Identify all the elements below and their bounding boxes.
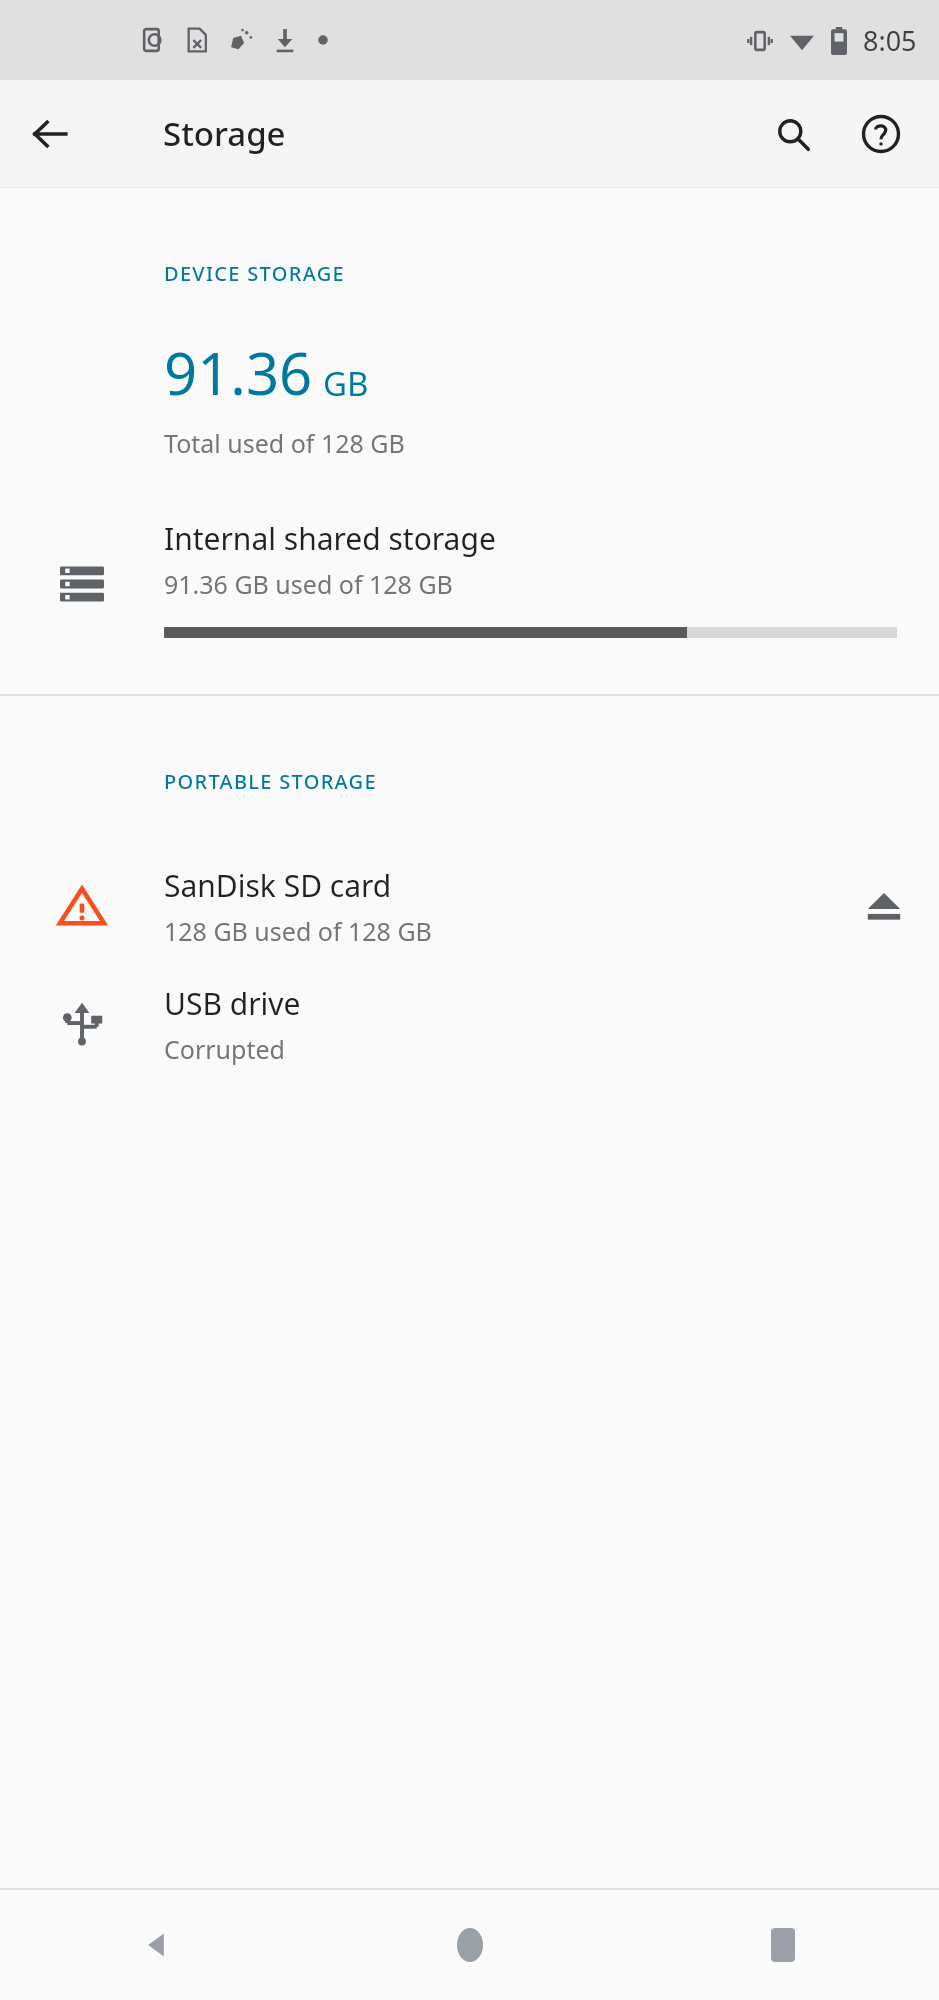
staticText: 128 GB used of 128 GB [164,914,432,948]
staticText: PORTABLE STORAGE [164,768,377,795]
button[interactable]: Internal shared storage [0,510,939,638]
staticText: GB [323,361,369,406]
staticText: 91.36 [164,333,313,412]
button[interactable]: Eject [829,847,939,965]
staticText: SanDisk SD card [164,865,392,906]
button[interactable]: Home [313,1890,626,2000]
button[interactable]: Search [761,102,825,166]
staticText: Corrupted [164,1032,285,1066]
staticText: Internal shared storage [164,518,496,559]
staticText: 91.36 GB used of 128 GB [164,567,453,601]
button[interactable]: Back [0,1890,313,2000]
button[interactable]: Back [18,102,82,166]
staticText: USB drive [164,983,301,1024]
button[interactable]: Help [849,102,913,166]
staticText: Total used of 128 GB [164,426,405,460]
staticText: 8:05 [863,22,917,59]
staticText: Storage [163,111,286,156]
button[interactable]: USB drive [0,965,939,1083]
button[interactable]: Recents [626,1890,939,2000]
staticText: DEVICE STORAGE [164,260,345,287]
button[interactable]: SanDisk SD card [0,847,939,965]
